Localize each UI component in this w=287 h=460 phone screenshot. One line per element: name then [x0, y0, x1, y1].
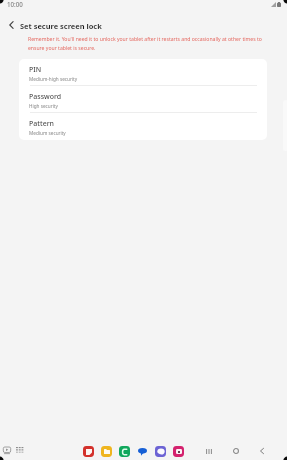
button[interactable]: Recents: [202, 444, 216, 458]
button[interactable]: My Files: [101, 446, 112, 457]
staticText: Medium-high security: [29, 76, 78, 82]
staticText: 10:00: [7, 0, 23, 8]
button[interactable]: Apps: [13, 444, 25, 456]
button[interactable]: Samsung DeX: [1, 444, 13, 456]
staticText: Remember it. You'll need it to unlock yo…: [28, 36, 262, 51]
button[interactable]: Samsung Notes: [83, 446, 94, 457]
staticText: High security: [29, 103, 58, 109]
staticText: Password: [29, 92, 62, 102]
staticText: Pattern: [29, 119, 55, 129]
button[interactable]: Password: [19, 86, 267, 113]
button[interactable]: Internet: [155, 446, 166, 457]
button[interactable]: Home: [229, 444, 243, 458]
staticText: PIN: [29, 65, 42, 75]
button[interactable]: Navigate up: [3, 16, 20, 33]
button[interactable]: Back: [255, 444, 269, 458]
button[interactable]: Messages: [137, 446, 148, 457]
staticText: Medium security: [29, 130, 66, 136]
button[interactable]: Camera: [173, 446, 184, 457]
staticText: Set secure screen lock: [20, 21, 102, 31]
button[interactable]: Pattern: [19, 113, 267, 140]
button[interactable]: Phone: [119, 446, 130, 457]
button[interactable]: PIN: [19, 59, 267, 86]
